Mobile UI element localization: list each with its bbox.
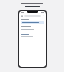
- button[interactable]: Menu: [20, 14, 23, 17]
- button[interactable]: [21, 28, 44, 30]
- button[interactable]: More options: [42, 14, 45, 17]
- button[interactable]: [21, 21, 44, 24]
- button[interactable]: [24, 15, 41, 17]
